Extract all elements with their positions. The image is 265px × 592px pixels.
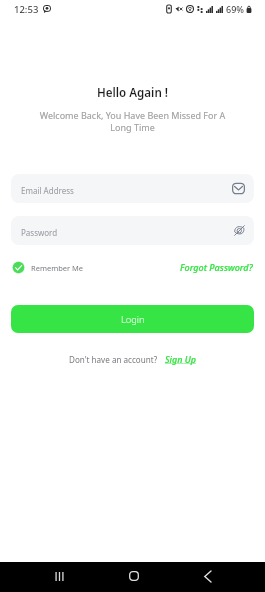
button[interactable]: Password <box>11 216 254 245</box>
button[interactable]: Back <box>196 570 219 582</box>
button[interactable]: Email Address <box>11 174 254 203</box>
button[interactable]: Recent apps <box>48 570 71 582</box>
staticText: 69% <box>226 3 244 15</box>
button[interactable]: Home <box>122 570 145 582</box>
staticText: Hello Again ! <box>0 85 265 101</box>
button[interactable]: Sign Up <box>165 353 196 365</box>
staticText: Email Address <box>21 185 74 196</box>
staticText: Login <box>121 313 145 326</box>
button[interactable]: Forgot Password? <box>180 261 253 273</box>
button[interactable]: Remember Me <box>12 261 84 274</box>
staticText: Welcome Back, You Have Been Missed For A… <box>0 109 265 133</box>
button[interactable]: Login <box>11 305 254 333</box>
staticText: Password <box>21 227 58 238</box>
staticText: 12:53 <box>14 3 39 16</box>
staticText: Remember Me <box>31 263 84 273</box>
staticText: Don't have an account? <box>69 354 158 365</box>
